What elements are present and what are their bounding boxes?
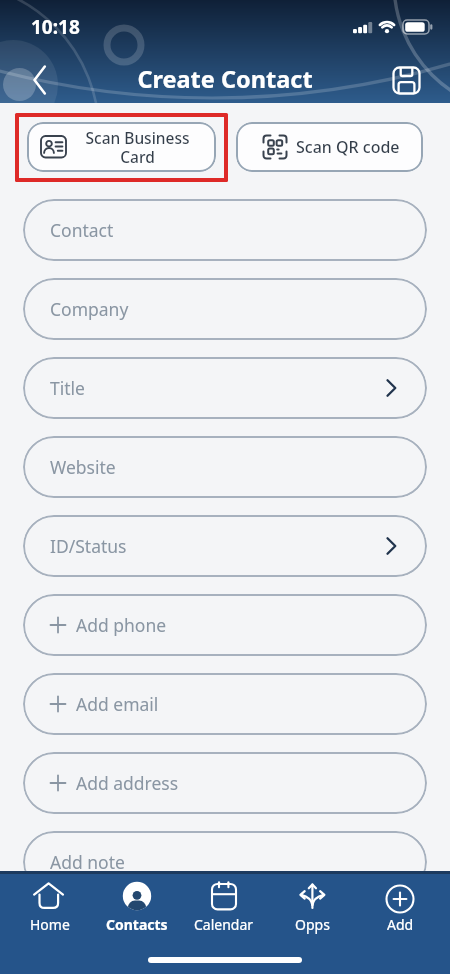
- staticText: 10:18: [31, 14, 80, 40]
- button[interactable]: Add note: [23, 831, 427, 893]
- button[interactable]: Add email: [23, 673, 427, 735]
- button[interactable]: Title: [23, 357, 427, 419]
- button[interactable]: Contacts: [93, 874, 180, 974]
- staticText: Company: [50, 297, 129, 321]
- staticText: Add address: [76, 771, 179, 795]
- staticText: Scan QR code: [296, 136, 400, 158]
- staticText: Calendar: [194, 915, 254, 934]
- staticText: Contact: [50, 218, 114, 242]
- button[interactable]: ID/Status: [23, 515, 427, 577]
- button[interactable]: Add address: [23, 752, 427, 814]
- staticText: Add: [387, 915, 414, 934]
- button[interactable]: Contact: [23, 199, 427, 261]
- button[interactable]: Company: [23, 278, 427, 340]
- staticText: Scan Business Card: [85, 127, 190, 167]
- staticText: ID/Status: [50, 534, 127, 558]
- staticText: Website: [50, 455, 116, 479]
- staticText: Add note: [50, 850, 125, 874]
- button[interactable]: Opps: [268, 874, 356, 974]
- button[interactable]: Website: [23, 436, 427, 498]
- staticText: Create Contact: [0, 63, 450, 95]
- staticText: Title: [50, 376, 85, 400]
- staticText: Contacts: [106, 915, 168, 934]
- staticText: Add email: [76, 692, 159, 716]
- staticText: Home: [30, 915, 70, 934]
- button[interactable]: [17, 58, 61, 102]
- button[interactable]: Add: [356, 874, 444, 974]
- button[interactable]: Scan QR code: [236, 122, 423, 172]
- staticText: Opps: [295, 915, 330, 934]
- button[interactable]: [384, 60, 428, 100]
- button[interactable]: Scan Business Card: [27, 122, 216, 172]
- staticText: Add phone: [76, 613, 167, 637]
- button[interactable]: Home: [6, 874, 93, 974]
- button[interactable]: Calendar: [180, 874, 268, 974]
- button[interactable]: Add phone: [23, 594, 427, 656]
